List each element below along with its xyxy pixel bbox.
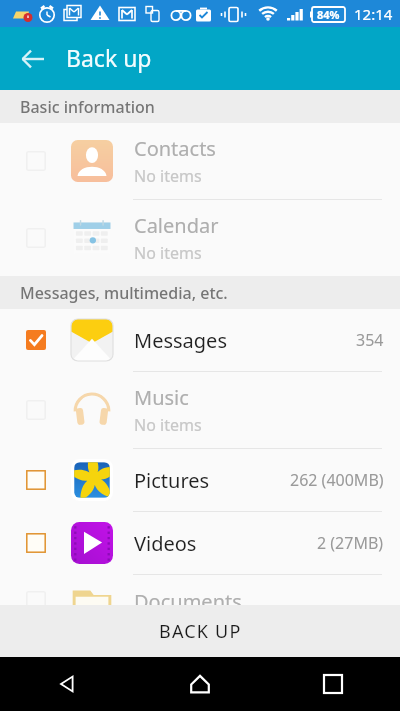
staticText: 12:14 (354, 4, 393, 24)
staticText: Back up (66, 42, 152, 73)
staticText: BACK UP (159, 619, 242, 644)
button[interactable]: Recents (303, 657, 363, 711)
staticText: 354 (356, 329, 384, 351)
button[interactable]: Calendar (0, 200, 400, 276)
button[interactable]: Contacts (0, 123, 400, 199)
staticText: Contacts (134, 135, 216, 162)
button[interactable]: Messages (0, 309, 400, 371)
staticText: Pictures (134, 467, 210, 494)
button[interactable]: Documents (0, 575, 400, 605)
staticText: No items (134, 242, 202, 264)
staticText: 84% (317, 7, 340, 21)
button[interactable]: Videos (0, 512, 400, 574)
staticText: Basic information (20, 96, 155, 118)
staticText: Messages (134, 327, 227, 354)
button[interactable]: Music (0, 372, 400, 448)
staticText: Documents (134, 588, 242, 605)
staticText: No items (134, 414, 202, 436)
button[interactable]: BACK UP (0, 605, 400, 657)
staticText: Videos (134, 530, 197, 557)
staticText: Music (134, 384, 189, 411)
button[interactable]: Home (170, 657, 230, 711)
staticText: Messages, multimedia, etc. (20, 282, 228, 304)
staticText: 2 (27MB) (317, 532, 384, 554)
button[interactable]: Pictures (0, 449, 400, 511)
button[interactable]: Back (37, 657, 97, 711)
staticText: No items (134, 165, 202, 187)
staticText: Calendar (134, 212, 219, 239)
button[interactable]: Back (0, 27, 66, 90)
staticText: 262 (400MB) (290, 469, 384, 491)
